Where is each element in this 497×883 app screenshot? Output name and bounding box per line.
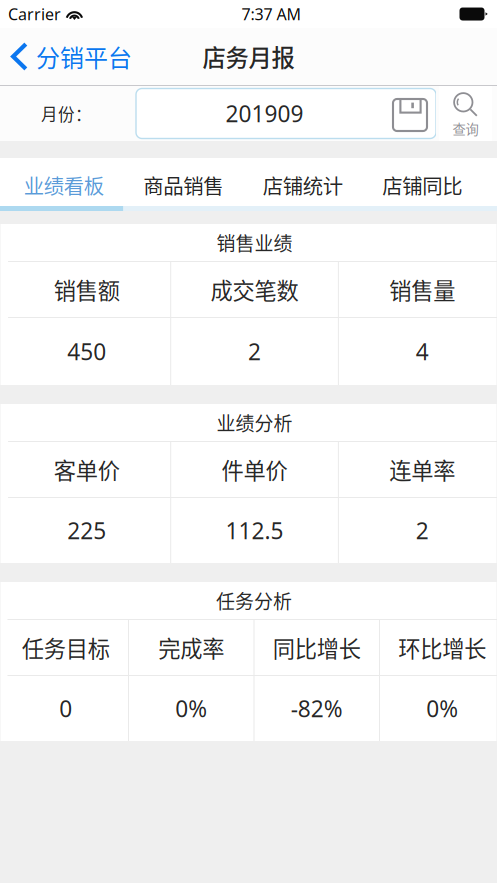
- staticText: 连单率: [389, 453, 455, 486]
- staticText: 查询: [452, 119, 478, 138]
- staticText: 分销平台: [36, 39, 132, 74]
- staticText: 销售额: [54, 273, 120, 306]
- staticText: 完成率: [158, 631, 224, 664]
- staticText: 成交笔数: [210, 273, 298, 306]
- staticText: 销售业绩: [216, 229, 292, 256]
- staticText: 业绩分析: [216, 409, 292, 436]
- staticText: 业绩看板: [24, 170, 104, 200]
- staticText: -82%: [291, 693, 343, 723]
- staticText: 0: [59, 693, 72, 723]
- staticText: 201909: [225, 98, 303, 128]
- staticText: 环比增长: [398, 631, 486, 664]
- staticText: 0%: [175, 693, 207, 723]
- button[interactable]: 查询: [439, 86, 492, 141]
- staticText: 任务目标: [22, 631, 110, 664]
- staticText: 0%: [426, 693, 458, 723]
- staticText: 店务月报: [202, 40, 294, 73]
- button[interactable]: 店铺同比: [362, 158, 482, 206]
- staticText: 件单价: [221, 453, 287, 486]
- staticText: 客单价: [54, 453, 120, 486]
- button[interactable]: 业绩看板: [4, 158, 123, 206]
- staticText: 2: [248, 336, 261, 366]
- staticText: 7:37 AM: [241, 3, 301, 25]
- staticText: 店铺同比: [382, 170, 462, 200]
- staticText: Carrier: [8, 3, 61, 25]
- staticText: 月份：: [41, 101, 92, 125]
- button[interactable]: 商品销售: [123, 158, 243, 206]
- staticText: 112.5: [225, 515, 283, 545]
- staticText: 销售量: [389, 273, 455, 306]
- staticText: 同比增长: [273, 631, 361, 664]
- button[interactable]: 店铺统计: [243, 158, 362, 206]
- button[interactable]: 分销平台: [0, 28, 144, 84]
- staticText: 225: [67, 515, 106, 545]
- staticText: 4: [416, 336, 429, 366]
- staticText: 商品销售: [143, 170, 223, 200]
- staticText: 450: [67, 336, 106, 366]
- staticText: 任务分析: [216, 587, 292, 614]
- staticText: 2: [416, 515, 429, 545]
- staticText: 店铺统计: [263, 170, 343, 200]
